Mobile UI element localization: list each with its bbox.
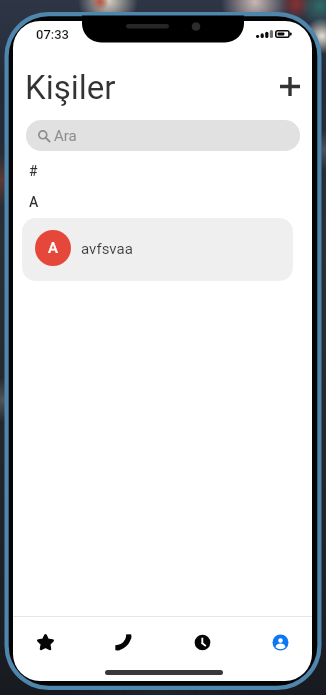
staticText: #: [29, 163, 38, 179]
staticText: Ara: [54, 127, 77, 145]
button[interactable]: A: [22, 218, 293, 281]
staticText: avfsvaa: [81, 240, 133, 258]
staticText: A: [48, 239, 58, 257]
button[interactable]: Add contact: [270, 66, 310, 106]
staticText: Kişiler: [25, 68, 116, 107]
button[interactable]: Ara: [26, 120, 300, 151]
staticText: A: [29, 194, 39, 210]
staticText: 07:33: [36, 27, 70, 42]
button[interactable]: Recents: [163, 617, 242, 669]
button[interactable]: Calls: [84, 617, 163, 669]
button[interactable]: Contacts: [241, 617, 312, 669]
button[interactable]: Favorites: [13, 617, 85, 669]
